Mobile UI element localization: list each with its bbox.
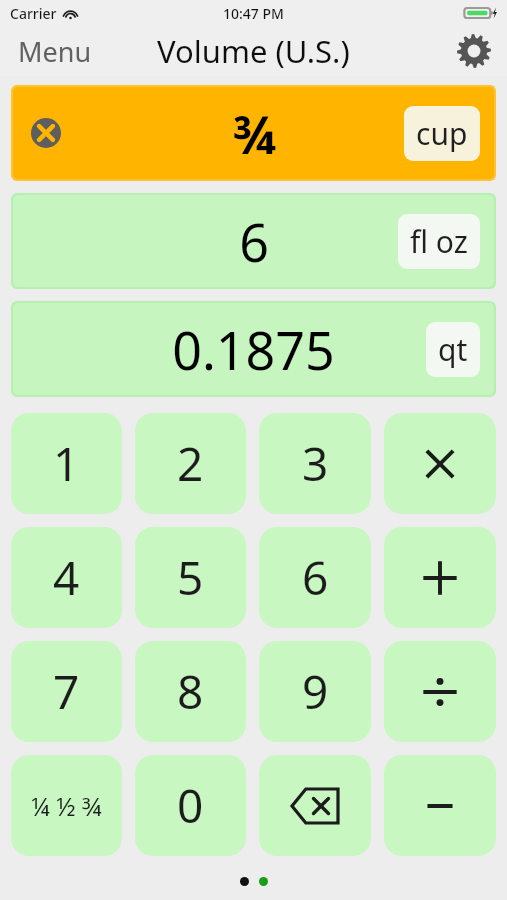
button[interactable]: 9 xyxy=(259,641,371,742)
button[interactable]: cup xyxy=(404,106,480,161)
staticText: 3 xyxy=(302,432,329,495)
staticText: fl oz xyxy=(410,221,468,262)
staticText: 0 xyxy=(177,774,204,837)
staticText: cup xyxy=(416,113,468,154)
staticText: Carrier xyxy=(10,4,57,23)
button[interactable]: 6 xyxy=(13,195,494,287)
staticText: ¾ xyxy=(232,98,276,169)
staticText: Menu xyxy=(18,33,92,70)
button[interactable]: 5 xyxy=(135,527,246,628)
button[interactable]: qt xyxy=(426,322,480,377)
button[interactable]: 0 xyxy=(135,755,246,856)
button[interactable]: Subtract xyxy=(384,755,496,856)
button[interactable]: 0.1875 xyxy=(13,303,494,395)
staticText: 5 xyxy=(177,546,204,609)
button[interactable]: fl oz xyxy=(398,214,480,269)
staticText: 6 xyxy=(239,206,269,277)
button[interactable]: Divide xyxy=(384,641,496,742)
staticText: ¼ ½ ¾ xyxy=(31,789,102,823)
button[interactable]: ¼ ½ ¾ xyxy=(11,755,122,856)
button[interactable]: Settings xyxy=(455,32,493,70)
button[interactable]: 3 xyxy=(259,413,371,514)
button[interactable]: Multiply xyxy=(384,413,496,514)
button[interactable]: 1 xyxy=(11,413,122,514)
button[interactable]: Clear xyxy=(31,118,61,148)
button[interactable]: Menu xyxy=(0,27,102,76)
staticText: qt xyxy=(438,329,468,370)
button[interactable]: 2 xyxy=(135,413,246,514)
staticText: 6 xyxy=(302,546,329,609)
button[interactable]: Clear xyxy=(13,87,494,179)
staticText: 8 xyxy=(177,660,204,723)
button[interactable]: 7 xyxy=(11,641,122,742)
staticText: 7 xyxy=(53,660,80,723)
button[interactable]: Add xyxy=(384,527,496,628)
staticText: 2 xyxy=(177,432,204,495)
staticText: 10:47 PM xyxy=(223,4,284,23)
staticText: 9 xyxy=(302,660,329,723)
button[interactable]: 4 xyxy=(11,527,122,628)
button[interactable]: 8 xyxy=(135,641,246,742)
staticText: 1 xyxy=(53,432,80,495)
button[interactable]: 6 xyxy=(259,527,371,628)
staticText: 0.1875 xyxy=(172,314,335,385)
button[interactable]: Backspace xyxy=(259,755,371,856)
staticText: 4 xyxy=(53,546,80,609)
staticText: Volume (U.S.) xyxy=(157,30,350,72)
